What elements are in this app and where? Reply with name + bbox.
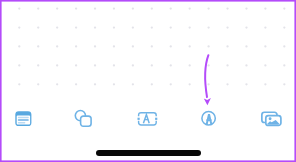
button[interactable]: Text box xyxy=(119,101,178,135)
button[interactable]: Shapes xyxy=(60,101,119,135)
button[interactable]: Notes xyxy=(0,101,60,135)
button[interactable]: Text style xyxy=(178,101,237,135)
button[interactable]: Photos xyxy=(237,101,296,135)
